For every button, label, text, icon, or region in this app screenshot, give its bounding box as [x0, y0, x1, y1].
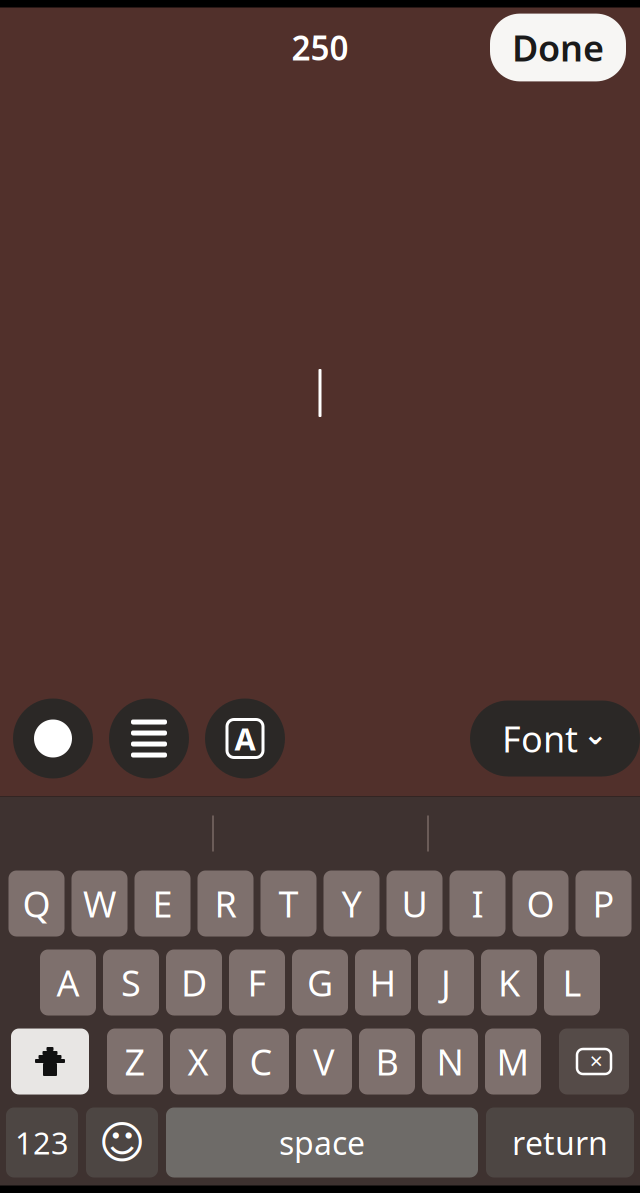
- button[interactable]: I: [449, 870, 505, 936]
- button[interactable]: F: [229, 949, 285, 1015]
- button[interactable]: K: [481, 949, 537, 1015]
- button[interactable]: E: [134, 870, 190, 936]
- staticText: V: [313, 1038, 335, 1085]
- button[interactable]: Font: [470, 700, 640, 776]
- staticText: L: [562, 959, 581, 1006]
- button[interactable]: Alignment: [109, 698, 189, 778]
- button[interactable]: return: [486, 1107, 634, 1177]
- staticText: Y: [341, 880, 361, 927]
- button[interactable]: Text effect: [205, 698, 285, 778]
- button[interactable]: X: [170, 1028, 226, 1094]
- button[interactable]: Y: [323, 870, 379, 936]
- staticText: B: [375, 1038, 398, 1085]
- button[interactable]: V: [296, 1028, 352, 1094]
- staticText: M: [496, 1038, 529, 1085]
- button[interactable]: J: [418, 949, 474, 1015]
- staticText: I: [471, 880, 483, 927]
- staticText: N: [436, 1038, 463, 1085]
- staticText: P: [592, 880, 614, 927]
- staticText: return: [512, 1121, 608, 1164]
- button[interactable]: Shift: [11, 1028, 89, 1094]
- button[interactable]: G: [292, 949, 348, 1015]
- button[interactable]: T: [260, 870, 316, 936]
- button[interactable]: A: [40, 949, 96, 1015]
- staticText: J: [441, 959, 451, 1006]
- button[interactable]: H: [355, 949, 411, 1015]
- staticText: A: [56, 959, 79, 1006]
- staticText: O: [526, 880, 554, 927]
- staticText: C: [249, 1038, 272, 1085]
- button[interactable]: W: [71, 870, 127, 936]
- staticText: ⌄: [583, 717, 608, 751]
- staticText: W: [83, 880, 116, 927]
- staticText: U: [401, 880, 427, 927]
- button[interactable]: Z: [107, 1028, 163, 1094]
- button[interactable]: Delete: [559, 1028, 629, 1094]
- staticText: S: [121, 959, 141, 1006]
- staticText: G: [307, 959, 333, 1006]
- button[interactable]: 123: [6, 1107, 78, 1177]
- staticText: R: [214, 880, 236, 927]
- staticText: D: [181, 959, 207, 1006]
- staticText: 250: [291, 25, 348, 70]
- staticText: Z: [124, 1038, 145, 1085]
- button[interactable]: B: [359, 1028, 415, 1094]
- button[interactable]: Emoji keyboard: [86, 1107, 158, 1177]
- button[interactable]: space: [166, 1107, 478, 1177]
- button[interactable]: R: [197, 870, 253, 936]
- staticText: 123: [15, 1122, 69, 1163]
- staticText: K: [498, 959, 520, 1006]
- button[interactable]: Done: [490, 14, 626, 81]
- staticText: ✕: [589, 1052, 604, 1071]
- button[interactable]: M: [485, 1028, 541, 1094]
- button[interactable]: O: [512, 870, 568, 936]
- staticText: space: [279, 1121, 365, 1164]
- staticText: X: [187, 1038, 208, 1085]
- button[interactable]: S: [103, 949, 159, 1015]
- button[interactable]: N: [422, 1028, 478, 1094]
- button[interactable]: Text color: [13, 698, 93, 778]
- button[interactable]: L: [544, 949, 600, 1015]
- staticText: Done: [512, 24, 604, 71]
- staticText: E: [152, 880, 172, 927]
- staticText: Font: [502, 715, 578, 762]
- staticText: Q: [22, 880, 50, 927]
- button[interactable]: C: [233, 1028, 289, 1094]
- staticText: ☺: [98, 1117, 145, 1168]
- button[interactable]: Q: [8, 870, 64, 936]
- button[interactable]: P: [575, 870, 631, 936]
- button[interactable]: U: [386, 870, 442, 936]
- staticText: T: [278, 880, 298, 927]
- button[interactable]: D: [166, 949, 222, 1015]
- staticText: A: [234, 718, 255, 759]
- staticText: H: [369, 959, 396, 1006]
- staticText: F: [247, 959, 266, 1006]
